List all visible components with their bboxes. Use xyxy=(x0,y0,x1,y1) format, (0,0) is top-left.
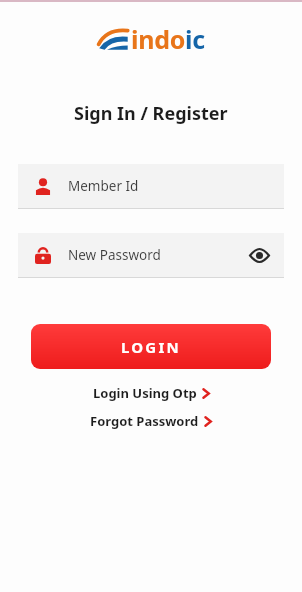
staticText: indoic xyxy=(131,22,205,56)
button[interactable]: Show password xyxy=(242,238,276,272)
button[interactable]: LOGIN xyxy=(31,324,271,369)
staticText: Sign In / Register xyxy=(74,101,228,126)
button[interactable]: Member Id xyxy=(18,164,284,209)
button[interactable]: Forgot Password xyxy=(84,410,218,432)
staticText: Login Using Otp xyxy=(93,384,197,402)
button[interactable]: New Password xyxy=(18,233,284,278)
staticText: Forgot Password xyxy=(90,412,199,430)
staticText: LOGIN xyxy=(121,337,181,357)
staticText: Member Id xyxy=(68,177,270,195)
button[interactable]: Login Using Otp xyxy=(87,382,216,404)
staticText: New Password xyxy=(68,246,242,264)
